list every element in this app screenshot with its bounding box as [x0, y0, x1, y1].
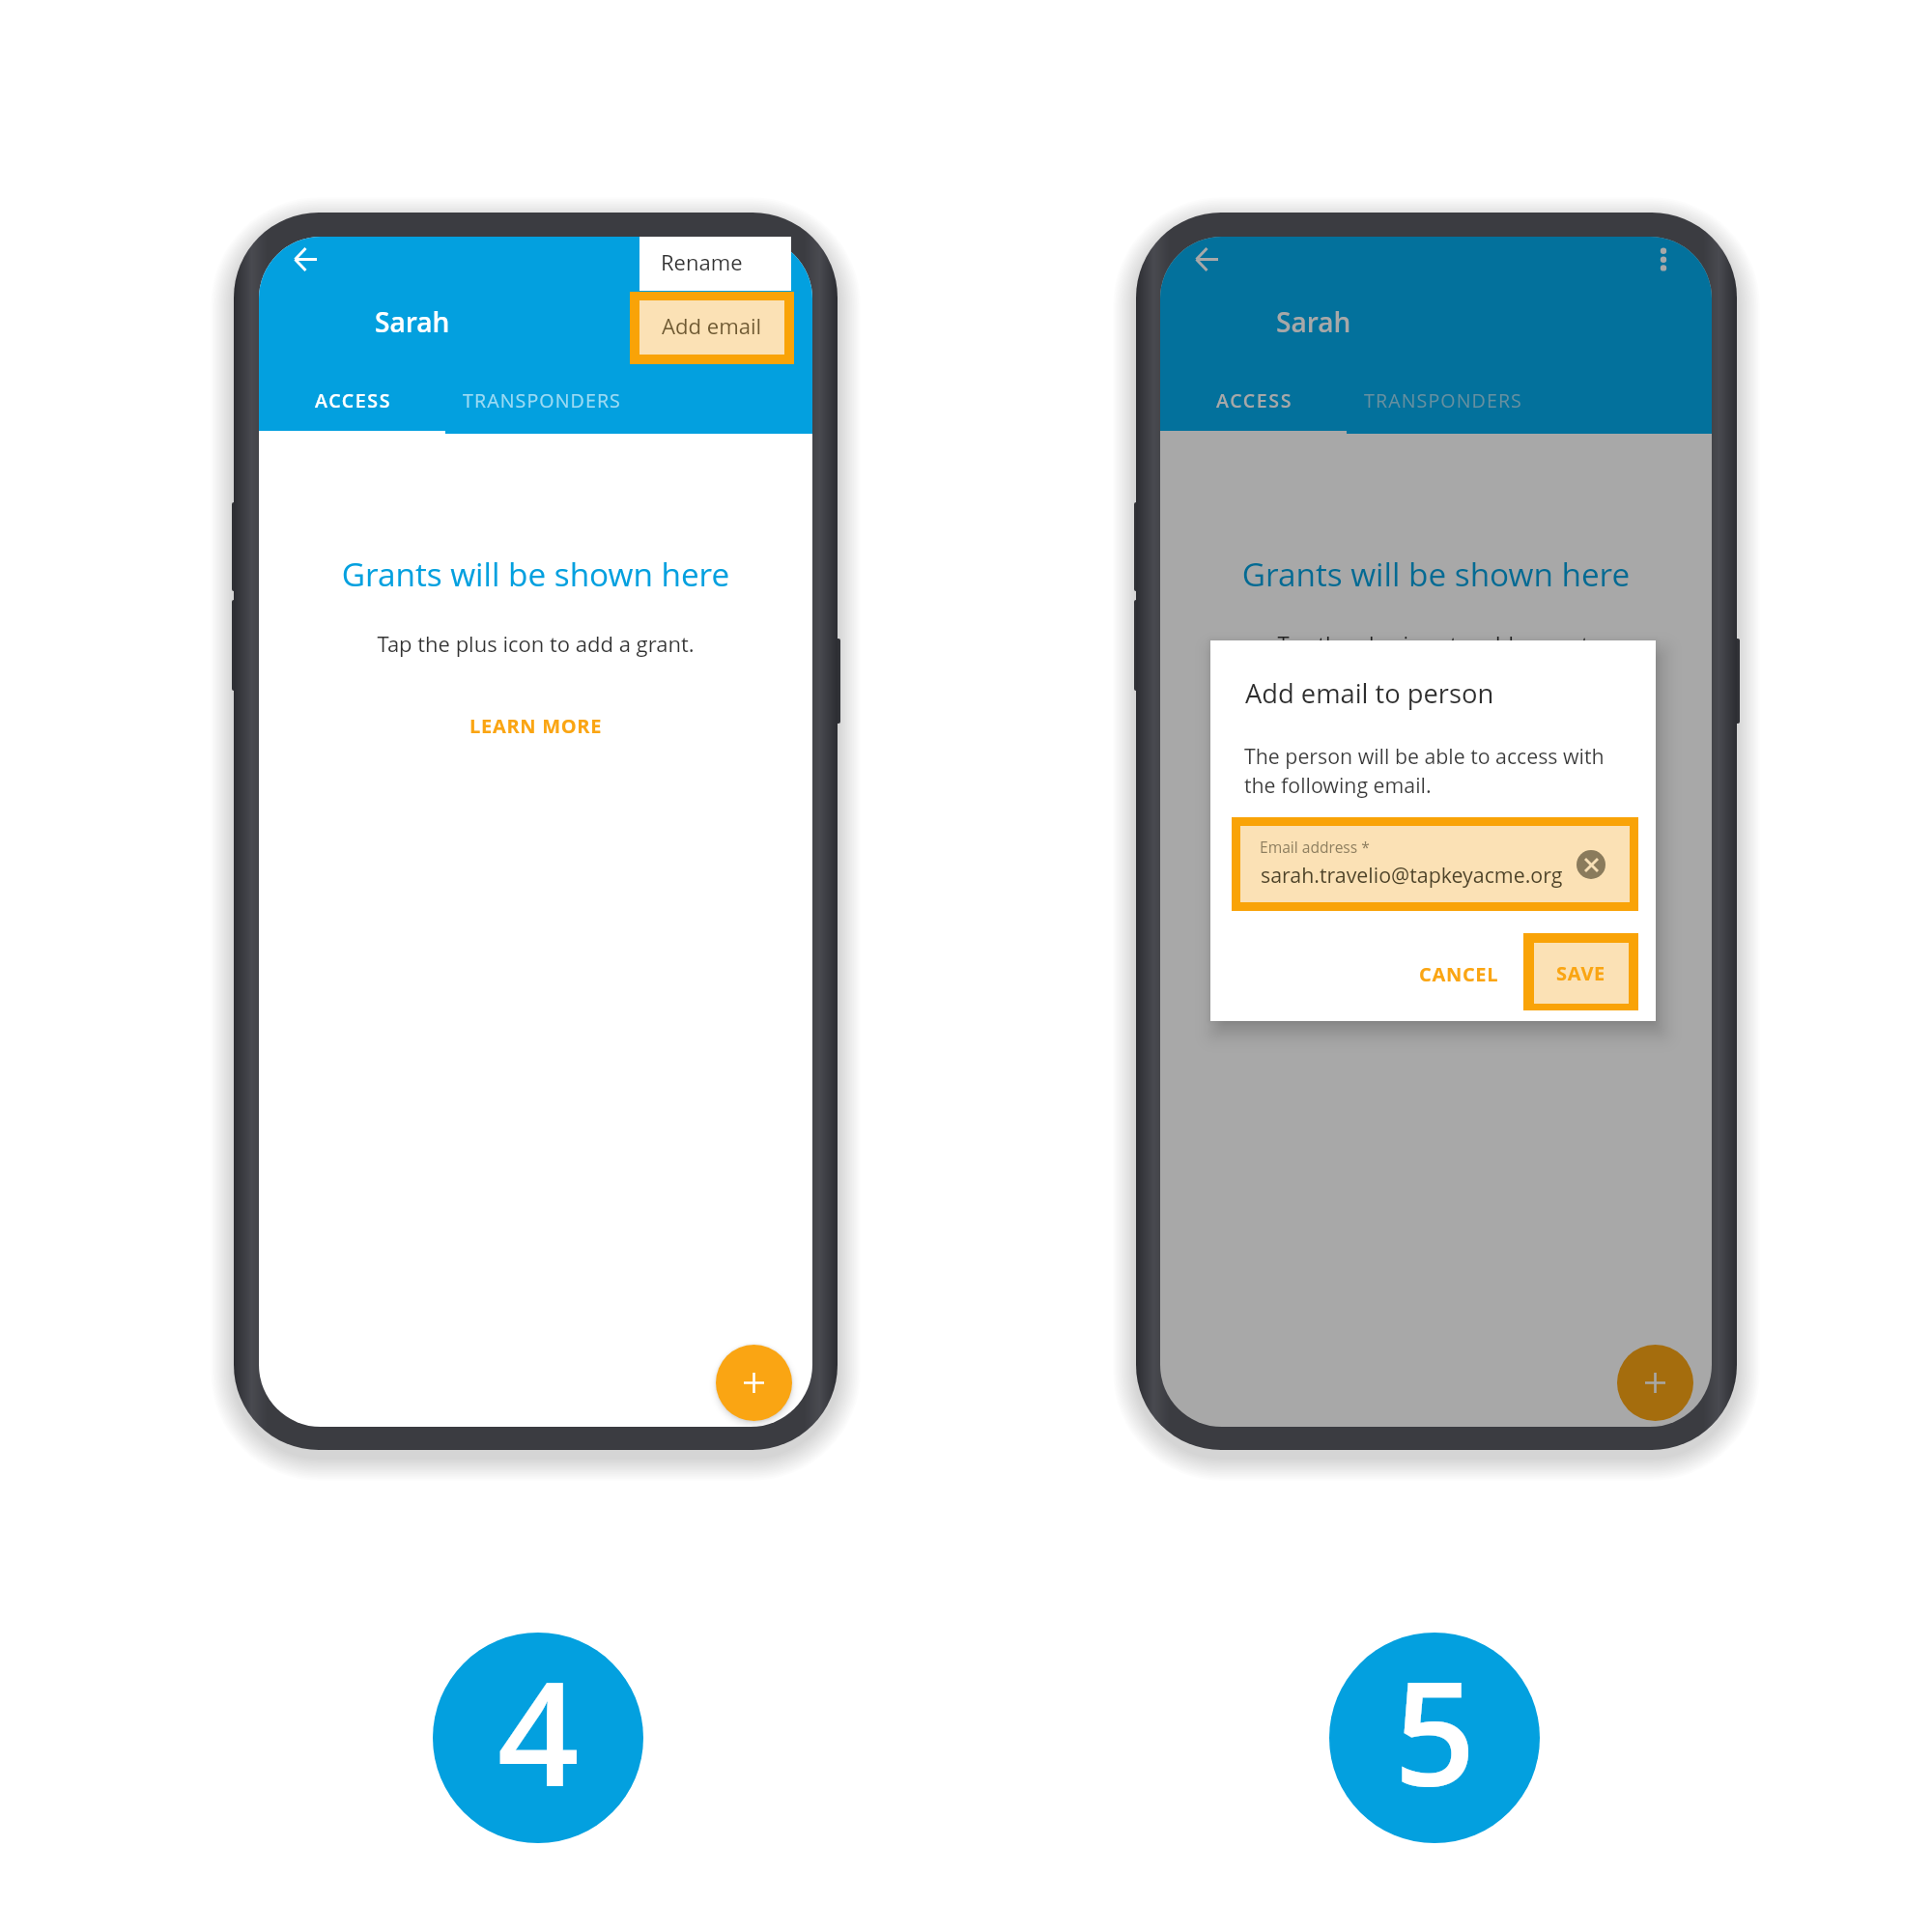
button[interactable]: TRANSPONDERS [1347, 372, 1578, 434]
staticText: TRANSPONDERS [1364, 387, 1522, 413]
button[interactable]: LEARN MORE [384, 703, 687, 748]
staticText: 4 [497, 1634, 580, 1829]
button[interactable]: Add grant [1617, 1345, 1693, 1421]
button[interactable]: More options [1639, 237, 1712, 309]
staticText: ACCESS [315, 387, 392, 413]
staticText: Sarah [1276, 303, 1351, 340]
staticText: ACCESS [1216, 387, 1293, 413]
staticText: The person will be able to access with t… [1244, 742, 1605, 799]
button[interactable]: Clear text [1577, 850, 1605, 879]
staticText: Email address * [1260, 837, 1370, 857]
button[interactable]: Back [1177, 237, 1236, 289]
button[interactable]: SAVE [1523, 933, 1638, 1010]
staticText: Grants will be shown here [259, 552, 812, 595]
button[interactable]: Add email [630, 292, 794, 364]
staticText: Tap the plus icon to add a grant. [259, 629, 812, 658]
button[interactable]: CANCEL [1396, 951, 1521, 997]
button[interactable]: TRANSPONDERS [445, 372, 677, 434]
staticText: Sarah [375, 303, 450, 340]
staticText: SAVE [1556, 960, 1606, 986]
staticText: Grants will be shown here [1160, 552, 1712, 595]
staticText: Add email to person [1245, 675, 1494, 711]
staticText: sarah.travelio@tapkeyacme.org [1261, 861, 1563, 889]
staticText: Tap the plus icon to add a grant. [1160, 629, 1712, 658]
button[interactable]: ACCESS [1160, 372, 1347, 434]
button[interactable]: Rename [639, 237, 791, 291]
button[interactable]: Add grant [716, 1345, 792, 1421]
staticText: Rename [661, 247, 743, 276]
staticText: TRANSPONDERS [463, 387, 621, 413]
button[interactable]: ACCESS [259, 372, 445, 434]
button[interactable]: Back [275, 237, 335, 289]
staticText: Add email [662, 311, 762, 340]
staticText: 5 [1394, 1634, 1476, 1829]
staticText: LEARN MORE [469, 713, 603, 739]
staticText: CANCEL [1419, 961, 1499, 987]
